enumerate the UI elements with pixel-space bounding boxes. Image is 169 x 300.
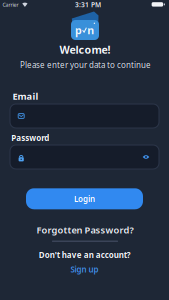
staticText: Don't have an account? [39,249,131,260]
button[interactable]: Sign up [70,264,98,275]
staticText: Password [11,132,49,143]
button[interactable]: Login [26,188,143,209]
staticText: 3:31 PM [75,0,101,9]
staticText: Please enter your data to continue [20,59,151,70]
button[interactable] [10,145,159,169]
button[interactable]: Forgotten Password? [35,225,135,243]
staticText: Login [74,193,95,204]
staticText: Forgotten Password? [36,224,133,236]
button[interactable] [10,104,159,128]
staticText: p [75,23,82,37]
staticText: Email [12,90,38,102]
staticText: Carrier [3,1,19,8]
staticText: Welcome! [59,43,110,57]
staticText: Sign up [70,264,98,275]
staticText: n [87,23,94,37]
